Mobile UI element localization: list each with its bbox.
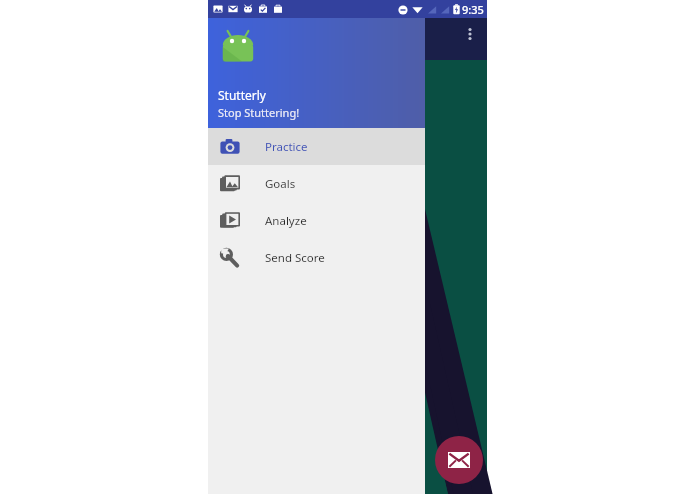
- button[interactable]: Compose message: [435, 436, 483, 484]
- button[interactable]: Practice: [208, 128, 425, 165]
- staticText: Practice: [265, 139, 308, 155]
- staticText: Stop Stuttering!: [218, 105, 300, 120]
- staticText: 9:35: [462, 2, 484, 17]
- button[interactable]: More options: [453, 17, 487, 51]
- staticText: Goals: [265, 176, 296, 192]
- button[interactable]: Send Score: [208, 239, 425, 276]
- staticText: Stutterly: [218, 87, 266, 103]
- staticText: Send Score: [265, 250, 325, 266]
- button[interactable]: Goals: [208, 165, 425, 202]
- staticText: Analyze: [265, 213, 307, 229]
- button[interactable]: Analyze: [208, 202, 425, 239]
